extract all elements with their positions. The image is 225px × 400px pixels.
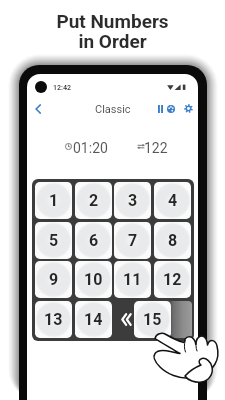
- button[interactable]: Back: [29, 100, 47, 118]
- staticText: 6: [89, 231, 99, 250]
- button[interactable]: 5: [35, 222, 72, 259]
- button[interactable]: 11: [114, 261, 151, 298]
- button[interactable]: 10: [75, 261, 112, 298]
- button[interactable]: 12: [154, 261, 191, 298]
- button[interactable]: Pause: [154, 101, 166, 116]
- button[interactable]: 6: [75, 222, 112, 259]
- button[interactable]: 2: [75, 182, 112, 219]
- button[interactable]: 14: [75, 301, 112, 338]
- button[interactable]: 9: [35, 261, 72, 298]
- staticText: 15: [143, 310, 162, 329]
- staticText: 4: [168, 191, 178, 210]
- staticText: 12:42: [53, 84, 72, 92]
- staticText: 1: [49, 191, 59, 210]
- staticText: 2: [89, 191, 99, 210]
- button[interactable]: 7: [114, 222, 151, 259]
- staticText: 122: [144, 140, 168, 156]
- staticText: 3: [128, 191, 138, 210]
- button[interactable]: Theme: [165, 101, 177, 116]
- staticText: 8: [168, 231, 178, 250]
- staticText: 12: [163, 270, 182, 289]
- staticText: 11: [123, 270, 142, 289]
- staticText: 7: [128, 231, 138, 250]
- staticText: 5: [49, 231, 59, 250]
- staticText: in Order: [78, 30, 147, 52]
- button[interactable]: 4: [154, 182, 191, 219]
- staticText: 10: [84, 270, 103, 289]
- staticText: Put Numbers: [56, 10, 169, 32]
- staticText: Classic: [95, 103, 131, 116]
- staticText: 9: [49, 270, 59, 289]
- button[interactable]: 13: [35, 301, 72, 338]
- button[interactable]: 8: [154, 222, 191, 259]
- button[interactable]: Settings: [181, 101, 195, 116]
- staticText: 01:20: [73, 140, 108, 156]
- staticText: 13: [44, 310, 63, 329]
- staticText: 14: [84, 310, 103, 329]
- button[interactable]: 3: [114, 182, 151, 219]
- button[interactable]: 15: [134, 301, 171, 338]
- button[interactable]: 1: [35, 182, 72, 219]
